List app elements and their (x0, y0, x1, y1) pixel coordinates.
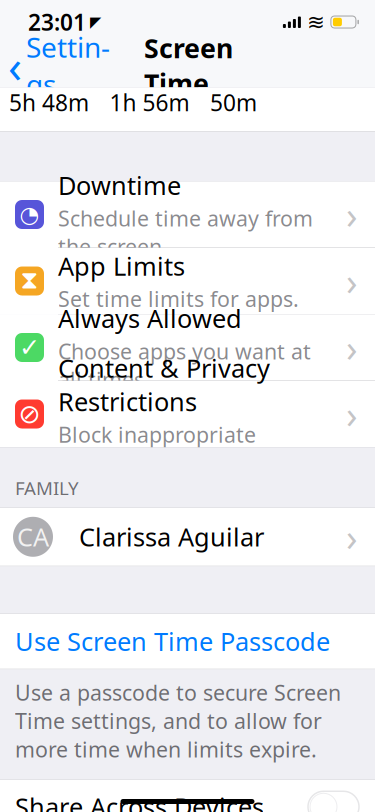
staticText: Use Screen Time Passcode (15, 624, 330, 658)
staticText: Always Allowed (58, 301, 242, 335)
staticText: › (346, 389, 358, 439)
staticText: ✓ (19, 333, 40, 362)
staticText: ‹ (8, 35, 22, 96)
staticText: Choose apps you want at all times. (58, 337, 311, 394)
staticText: 1h 56m (109, 87, 189, 118)
staticText: Block inappropriate content. (58, 420, 256, 477)
staticText: Content & Privacy Restrictions (58, 351, 270, 418)
staticText: Screen Time (144, 30, 233, 101)
staticText: › (346, 256, 358, 306)
staticText: Downtime (58, 168, 181, 202)
staticText: FAMILY (15, 475, 79, 500)
staticText: Settings (26, 28, 110, 103)
staticText: 23:01 (28, 7, 86, 37)
staticText: ≋ (307, 10, 325, 34)
staticText: ◤ (90, 14, 101, 30)
staticText: ◔ (19, 202, 39, 227)
staticText: ⊘ (18, 399, 40, 429)
button[interactable]: CA (0, 508, 375, 566)
button[interactable]: ⧗ (0, 248, 375, 314)
staticText: Share Across Devices (15, 790, 264, 812)
staticText: CA (17, 520, 49, 554)
staticText: Use a passcode to secure Screen Time set… (15, 678, 341, 763)
button[interactable]: Use Screen Time Passcode (0, 614, 375, 669)
staticText: › (346, 323, 358, 372)
staticText: ⧗ (20, 269, 38, 293)
staticText: › (346, 190, 358, 239)
staticText: Set time limits for apps. (58, 285, 299, 313)
button[interactable]: ◔ (0, 181, 375, 248)
button[interactable]: ✓ (0, 314, 375, 381)
staticText: 50m (210, 87, 257, 118)
staticText: App Limits (58, 249, 185, 283)
staticText: › (346, 512, 358, 562)
staticText: Clarissa Aguilar (79, 520, 264, 554)
staticText: 5h 48m (9, 87, 89, 118)
staticText: Schedule time away from the screen. (58, 204, 313, 261)
button[interactable]: ⊘ (0, 381, 375, 447)
button[interactable]: Share Across Devices (0, 780, 375, 812)
button[interactable]: ‹ (0, 28, 110, 103)
